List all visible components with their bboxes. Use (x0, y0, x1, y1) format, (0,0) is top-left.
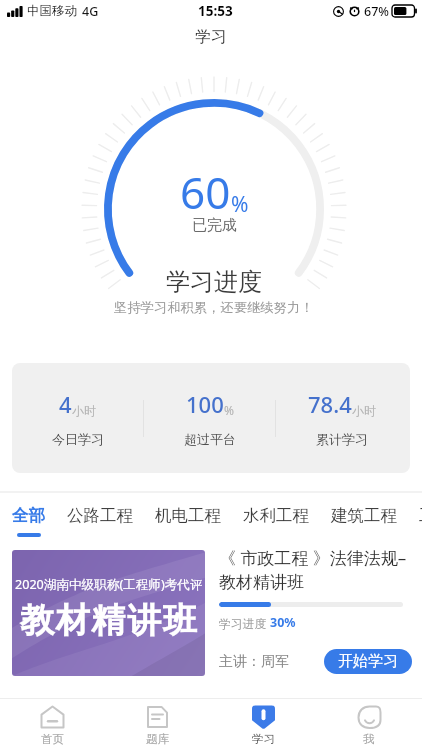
staticText: 《 市政工程 》法律法规– 教材精讲班 (219, 546, 407, 593)
staticText: 机电工程 (155, 505, 221, 526)
staticText: 78.4 (308, 389, 352, 419)
button[interactable]: 工 (408, 491, 422, 541)
staticText: 开始学习 (338, 652, 398, 671)
button[interactable]: 机电工程 (144, 491, 232, 541)
button[interactable]: 水利工程 (232, 491, 320, 541)
button[interactable]: 首页 (0, 699, 105, 750)
staticText: 全部 (12, 505, 45, 526)
button[interactable]: 公路工程 (56, 491, 144, 541)
staticText: 坚持学习和积累，还要继续努力！ (114, 299, 314, 316)
staticText: 67% (364, 3, 389, 20)
staticText: 题库 (146, 732, 169, 746)
staticText: 我 (363, 732, 375, 746)
staticText: 15:53 (198, 2, 233, 20)
staticText: 60 (180, 162, 231, 222)
staticText: 首页 (41, 732, 64, 746)
staticText: 建筑工程 (331, 505, 397, 526)
button[interactable]: 全部 (1, 491, 56, 541)
staticText: % (231, 190, 249, 219)
staticText: 公路工程 (67, 505, 133, 526)
staticText: 30% (270, 614, 296, 631)
staticText: 学习 (252, 732, 275, 746)
staticText: 超过平台 (184, 431, 236, 447)
staticText: % (224, 402, 234, 418)
staticText: 2020湖南中级职称(工程师)考代评 (15, 576, 203, 593)
staticText: 主讲：周军 (219, 653, 289, 671)
staticText: 学习进度 (219, 615, 270, 631)
staticText: 小时 (352, 403, 376, 418)
button[interactable]: 题库 (105, 699, 210, 750)
button[interactable]: 学习 (210, 699, 316, 750)
staticText: 教材精讲班 (19, 599, 198, 642)
staticText: 学习 (195, 27, 227, 47)
staticText: 学习进度 (166, 267, 262, 297)
staticText: 水利工程 (243, 505, 309, 526)
button[interactable]: 开始学习 (324, 649, 412, 674)
staticText: 4G (82, 3, 99, 20)
staticText: 累计学习 (316, 431, 368, 447)
button[interactable]: 2020湖南中级职称(工程师)考代评 (0, 550, 422, 678)
staticText: 今日学习 (52, 431, 104, 447)
staticText: 小时 (72, 403, 96, 418)
staticText: 4 (59, 389, 72, 419)
staticText: 已完成 (192, 216, 237, 235)
button[interactable]: 建筑工程 (320, 491, 408, 541)
button[interactable]: 我 (316, 699, 422, 750)
staticText: 中国移动 (27, 3, 77, 19)
staticText: 100 (186, 389, 224, 419)
